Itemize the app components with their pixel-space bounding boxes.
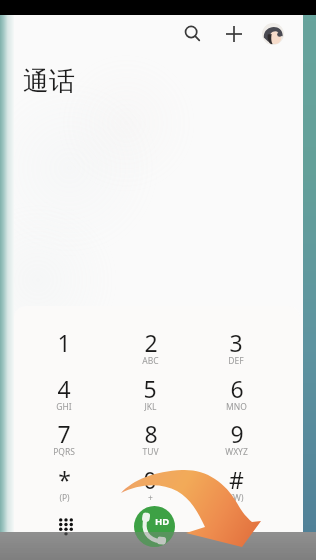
- button[interactable]: 3: [196, 327, 276, 369]
- staticText: 9: [230, 418, 244, 449]
- staticText: 5: [143, 373, 157, 404]
- staticText: TUV: [142, 446, 159, 457]
- staticText: JKL: [144, 401, 157, 412]
- button[interactable]: 6: [196, 373, 276, 415]
- staticText: 通话: [23, 65, 75, 98]
- button[interactable]: 9: [196, 418, 276, 460]
- button[interactable]: 4: [24, 373, 104, 415]
- button[interactable]: #: [196, 464, 276, 506]
- button[interactable]: 7: [24, 418, 104, 460]
- button[interactable]: 5: [110, 373, 190, 415]
- staticText: DEF: [228, 355, 244, 366]
- staticText: +: [148, 492, 153, 503]
- button[interactable]: Keypad: [52, 512, 80, 540]
- button[interactable]: Search: [180, 21, 205, 46]
- staticText: 2: [144, 327, 158, 358]
- staticText: GHI: [56, 401, 72, 412]
- button[interactable]: Profile: [262, 23, 284, 45]
- staticText: 4: [57, 373, 71, 404]
- staticText: 1: [57, 327, 71, 358]
- button[interactable]: Call: [134, 506, 175, 547]
- staticText: 0: [143, 464, 157, 495]
- staticText: HD: [155, 515, 170, 528]
- button[interactable]: 1: [24, 327, 104, 369]
- staticText: WXYZ: [225, 446, 248, 457]
- button[interactable]: 8: [110, 418, 190, 460]
- staticText: #: [229, 464, 244, 495]
- staticText: 8: [144, 418, 158, 449]
- staticText: 6: [230, 373, 244, 404]
- staticText: 3: [229, 327, 243, 358]
- button[interactable]: *: [24, 464, 104, 506]
- button[interactable]: Add contact: [221, 21, 246, 46]
- staticText: *: [58, 464, 71, 495]
- staticText: (W): [230, 492, 244, 503]
- staticText: (P): [59, 492, 70, 503]
- staticText: ABC: [142, 355, 159, 366]
- button[interactable]: 2: [110, 327, 190, 369]
- staticText: MNO: [226, 401, 247, 412]
- staticText: 7: [57, 418, 71, 449]
- button[interactable]: 0: [110, 464, 190, 506]
- staticText: PQRS: [53, 446, 75, 457]
